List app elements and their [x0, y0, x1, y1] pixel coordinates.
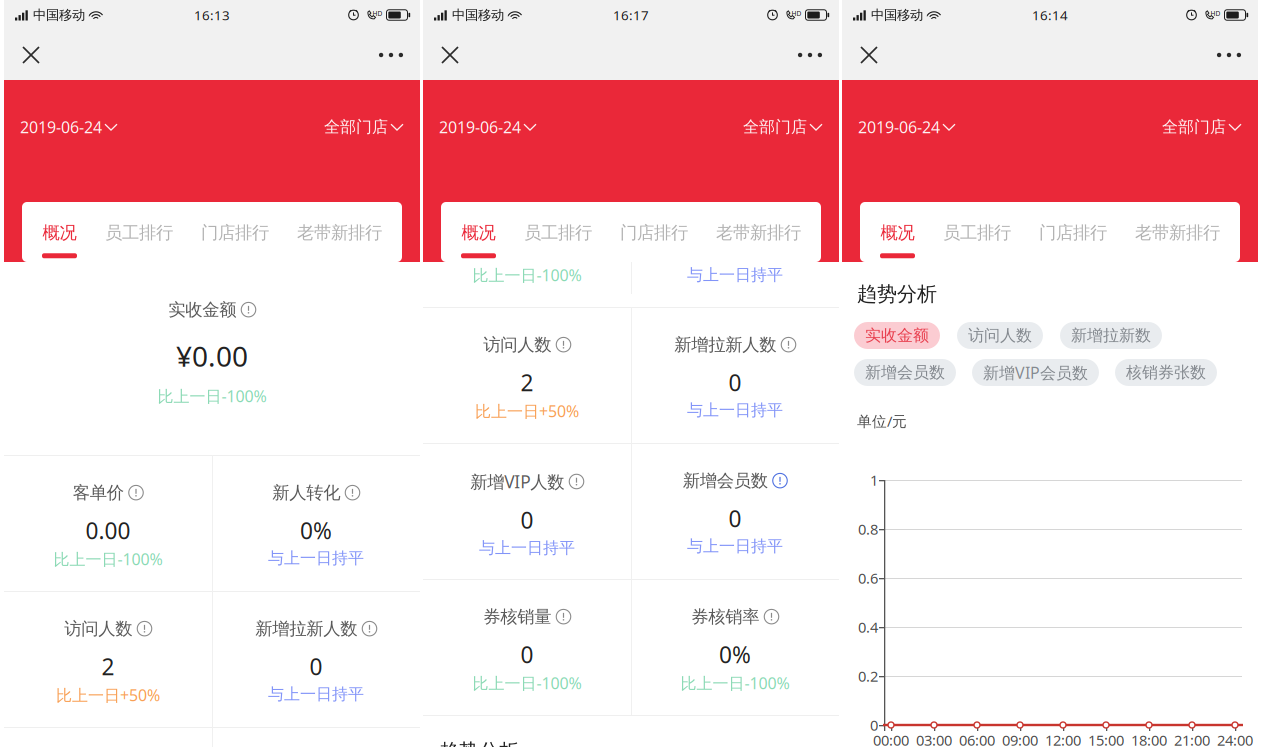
staticText: HD [1210, 9, 1220, 18]
button[interactable]: 访问人数 [957, 322, 1043, 349]
button[interactable]: 门店排行 [201, 202, 269, 262]
button[interactable]: 概况 [880, 202, 915, 262]
staticText: 0.6 [858, 568, 878, 588]
button[interactable]: 核销券张数 [1115, 359, 1217, 386]
button[interactable]: 员工排行 [105, 202, 173, 262]
button[interactable]: 客单价 [4, 455, 212, 591]
staticText: 2 [101, 651, 114, 681]
staticText: 新增拉新人数 [255, 618, 357, 639]
staticText: 0 [520, 505, 533, 535]
staticText: 中国移动 [871, 7, 923, 23]
button[interactable]: 全部门店 [727, 107, 839, 147]
staticText: 新增拉新人数 [674, 334, 776, 355]
staticText: 访问人数 [64, 618, 132, 639]
button[interactable]: More [1202, 30, 1258, 80]
staticText: 06:00 [959, 730, 995, 747]
button[interactable]: 概况 [461, 202, 496, 262]
button[interactable]: 员工排行 [943, 202, 1011, 262]
staticText: 09:00 [1002, 730, 1038, 747]
staticText: 与上一日持平 [687, 265, 783, 285]
staticText: 与上一日持平 [268, 684, 364, 704]
staticText: 2 [520, 367, 533, 397]
staticText: 0.8 [858, 519, 878, 539]
staticText: 0.2 [858, 666, 878, 686]
staticText: 与上一日持平 [687, 400, 783, 420]
button[interactable]: 门店排行 [620, 202, 688, 262]
staticText: 比上一日-100% [53, 548, 162, 570]
staticText: 访问人数 [968, 326, 1032, 345]
button[interactable]: 新增会员数 [631, 443, 839, 579]
staticText: 概况 [880, 222, 914, 243]
staticText: 新增VIP会员数 [983, 362, 1088, 383]
button[interactable]: 全部门店 [1146, 107, 1258, 147]
button[interactable]: Close [842, 30, 892, 80]
button[interactable]: 新增拉新人数 [631, 307, 839, 443]
staticText: 券核销率 [691, 606, 759, 627]
staticText: 2019-06-24 [20, 116, 102, 138]
staticText: 趋势分析 [439, 739, 519, 747]
staticText: 概况 [42, 222, 76, 243]
staticText: 0% [300, 515, 332, 545]
button[interactable]: 券核销率 [631, 579, 839, 715]
button[interactable]: 实收金额 [854, 322, 940, 349]
button[interactable]: 新增VIP会员数 [972, 359, 1099, 386]
staticText: 实收金额 [865, 326, 929, 345]
button[interactable]: 员工排行 [524, 202, 592, 262]
staticText: 16:13 [194, 6, 230, 24]
button[interactable]: More [783, 30, 839, 80]
button[interactable]: 老带新排行 [716, 202, 801, 262]
staticText: 单位/元 [857, 411, 907, 431]
button[interactable]: 新增会员数 [854, 359, 956, 386]
staticText: 12:00 [1045, 730, 1081, 747]
button[interactable]: Close [423, 30, 473, 80]
staticText: 门店排行 [201, 222, 269, 243]
staticText: 24:00 [1217, 730, 1253, 747]
button[interactable]: 新人转化 [212, 455, 420, 591]
staticText: 访问人数 [483, 334, 551, 355]
staticText: 门店排行 [620, 222, 688, 243]
staticText: 全部门店 [743, 117, 807, 137]
button[interactable]: More [364, 30, 420, 80]
staticText: 与上一日持平 [479, 538, 575, 558]
button[interactable]: 券核销量 [423, 579, 631, 715]
staticText: 15:00 [1088, 730, 1124, 747]
button[interactable]: 2019-06-24 [842, 106, 972, 148]
button[interactable]: Close [4, 30, 54, 80]
staticText: 新人转化 [272, 482, 340, 503]
staticText: 0 [520, 639, 533, 669]
button[interactable]: 访问人数 [4, 591, 212, 727]
staticText: 比上一日+50% [56, 684, 160, 706]
staticText: 核销券张数 [1126, 363, 1206, 382]
staticText: 2019-06-24 [858, 116, 940, 138]
staticText: 0 [309, 651, 322, 681]
staticText: 比上一日-100% [157, 385, 266, 407]
staticText: 中国移动 [452, 7, 504, 23]
staticText: 老带新排行 [716, 222, 801, 243]
staticText: 0.4 [858, 617, 878, 637]
button[interactable]: 新增拉新人数 [212, 591, 420, 727]
staticText: 新增会员数 [683, 470, 768, 491]
staticText: HD [791, 9, 801, 18]
staticText: 比上一日+50% [475, 400, 579, 422]
button[interactable]: 老带新排行 [297, 202, 382, 262]
staticText: 比上一日-100% [680, 672, 789, 694]
button[interactable]: 2019-06-24 [423, 106, 553, 148]
button[interactable]: 老带新排行 [1135, 202, 1220, 262]
staticText: 新增拉新数 [1071, 326, 1151, 345]
staticText: 0 [870, 715, 878, 735]
button[interactable]: 概况 [42, 202, 77, 262]
button[interactable]: 新增VIP人数 [423, 443, 631, 579]
button[interactable]: 2019-06-24 [4, 106, 134, 148]
staticText: 中国移动 [33, 7, 85, 23]
staticText: 0.00 [85, 515, 130, 545]
button[interactable]: 门店排行 [1039, 202, 1107, 262]
button[interactable]: 全部门店 [308, 107, 420, 147]
button[interactable]: 访问人数 [423, 307, 631, 443]
staticText: 员工排行 [524, 222, 592, 243]
staticText: 0 [728, 367, 741, 397]
button[interactable]: 新增拉新数 [1060, 322, 1162, 349]
staticText: 与上一日持平 [268, 548, 364, 568]
staticText: 1 [870, 470, 878, 490]
staticText: 与上一日持平 [687, 536, 783, 556]
staticText: HD [372, 9, 382, 18]
